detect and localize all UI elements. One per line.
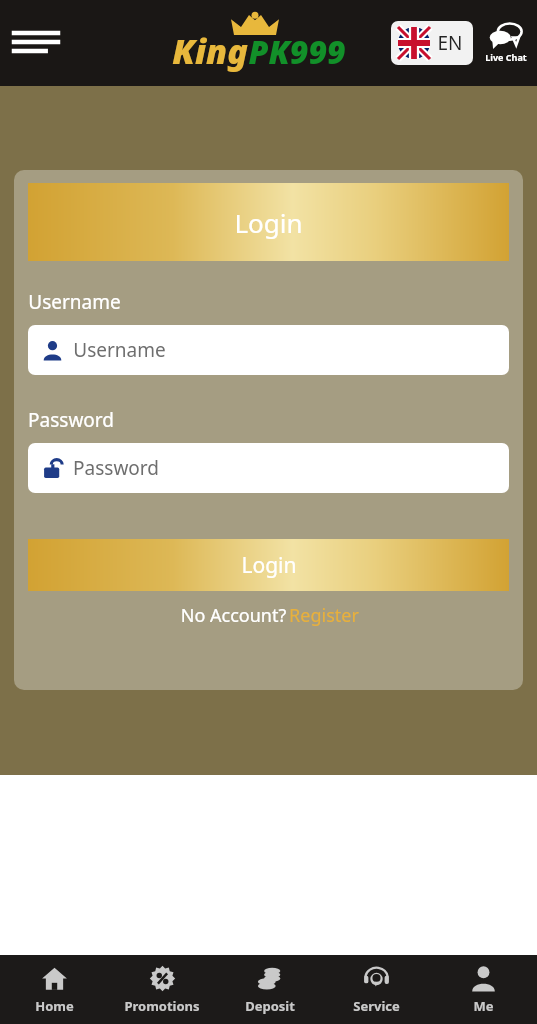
button[interactable]: Menu [8, 15, 64, 71]
staticText: Promotions [124, 997, 200, 1015]
staticText: Deposit [245, 997, 295, 1015]
button[interactable]: Home [0, 955, 108, 1024]
button[interactable]: Deposit [216, 955, 323, 1024]
staticText: Live Chat [485, 51, 527, 63]
staticText: PK999 [248, 30, 346, 74]
staticText: Me [473, 997, 494, 1015]
staticText: No Account? [178, 603, 289, 628]
button[interactable]: Service [323, 955, 430, 1024]
staticText: Username [73, 337, 166, 363]
staticText: Service [353, 997, 400, 1015]
button[interactable]: Username [28, 325, 509, 375]
staticText: Password [73, 455, 159, 481]
staticText: Login [241, 551, 297, 580]
staticText: Login [234, 205, 303, 240]
button[interactable]: Password [28, 443, 509, 493]
staticText: Username [28, 289, 121, 315]
staticText: Register [289, 603, 359, 628]
button[interactable]: Live Chat [479, 13, 533, 73]
button[interactable]: No Account? [28, 603, 509, 628]
staticText: EN [437, 30, 463, 56]
button[interactable]: Login [28, 539, 509, 591]
button[interactable]: Promotions [108, 955, 216, 1024]
button[interactable]: Login [28, 183, 509, 261]
staticText: Home [35, 997, 74, 1015]
staticText: Password [28, 407, 114, 433]
button[interactable]: KingPK999 home [154, 0, 364, 86]
staticText: King [172, 28, 248, 74]
button[interactable]: Me [430, 955, 537, 1024]
button[interactable]: EN [391, 21, 473, 65]
